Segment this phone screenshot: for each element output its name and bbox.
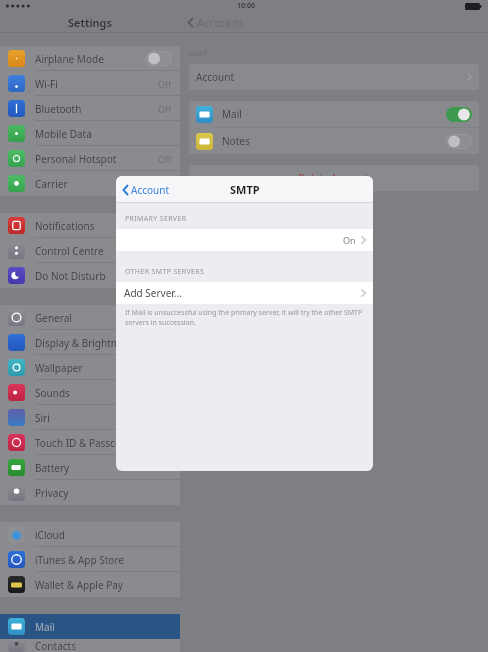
button[interactable]: Do Not Disturb xyxy=(0,263,180,288)
staticText: Bluetooth xyxy=(35,102,82,116)
button[interactable]: General xyxy=(0,305,180,330)
staticText: Settings xyxy=(68,15,112,30)
button[interactable]: Battery xyxy=(0,455,180,480)
button[interactable]: Bluetooth xyxy=(0,96,180,121)
staticText: Contacts xyxy=(35,639,76,652)
staticText: Privacy xyxy=(35,486,69,500)
staticText: OTHER SMTP SERVERS xyxy=(125,267,205,277)
button[interactable]: Wallpaper xyxy=(0,355,180,380)
button[interactable]: Account xyxy=(121,180,172,200)
button[interactable]: Control Centre xyxy=(0,238,180,263)
staticText: Wallet & Apple Pay xyxy=(35,578,123,592)
staticText: SMTP xyxy=(230,182,260,197)
staticText: Sounds xyxy=(35,386,70,400)
button[interactable]: Touch ID & Passcode xyxy=(0,430,180,455)
staticText: IMAP xyxy=(189,49,209,59)
staticText: 10:00 xyxy=(237,1,255,11)
button[interactable]: iTunes & App Store xyxy=(0,547,180,572)
button[interactable]: Personal Hotspot xyxy=(0,146,180,171)
staticText: Personal Hotspot xyxy=(35,152,117,166)
button[interactable]: On xyxy=(116,229,373,251)
staticText: Delete Account xyxy=(298,171,370,185)
button[interactable]: Mail xyxy=(0,614,180,639)
button[interactable]: Contacts xyxy=(0,639,180,652)
staticText: Notes xyxy=(222,134,250,148)
staticText: Wi-Fi xyxy=(35,77,58,91)
button[interactable]: Siri xyxy=(0,405,180,430)
button[interactable]: Wi-Fi xyxy=(0,71,180,96)
button[interactable]: iCloud xyxy=(0,522,180,547)
button[interactable]: Notes off xyxy=(446,134,472,149)
staticText: Wallpaper xyxy=(35,361,83,375)
button[interactable]: Mail xyxy=(189,101,479,127)
staticText: Display & Brightness xyxy=(35,336,133,350)
staticText: Siri xyxy=(35,411,50,425)
staticText: General xyxy=(35,311,72,325)
staticText: Off xyxy=(158,153,172,165)
button[interactable]: Carrier xyxy=(0,171,180,196)
staticText: Account xyxy=(196,70,235,84)
button[interactable]: Notifications xyxy=(0,213,180,238)
staticText: Add Server... xyxy=(124,286,182,300)
staticText: Touch ID & Passcode xyxy=(35,436,133,450)
button[interactable] xyxy=(146,51,172,66)
staticText: PRIMARY SERVER xyxy=(125,214,187,224)
button[interactable]: Notes xyxy=(189,128,479,154)
button[interactable]: Accounts xyxy=(186,13,247,32)
staticText: Notifications xyxy=(35,219,95,233)
button[interactable]: Account xyxy=(189,64,479,90)
staticText: Mail xyxy=(222,107,242,121)
staticText: Control Centre xyxy=(35,244,104,258)
staticText: Off xyxy=(158,103,172,115)
staticText: Airplane Mode xyxy=(35,52,104,66)
staticText: Carrier xyxy=(35,177,68,191)
button[interactable]: Add Server... xyxy=(116,282,373,304)
staticText: Account xyxy=(131,183,170,197)
staticText: iTunes & App Store xyxy=(35,553,124,567)
staticText: Accounts xyxy=(197,15,245,30)
staticText: iCloud xyxy=(35,528,65,542)
button[interactable]: Wallet & Apple Pay xyxy=(0,572,180,597)
button[interactable]: Mail on xyxy=(446,107,472,122)
button[interactable]: Mobile Data xyxy=(0,121,180,146)
staticText: Do Not Disturb xyxy=(35,269,106,283)
button[interactable]: Airplane Mode xyxy=(0,46,180,71)
staticText: Off xyxy=(158,78,172,90)
staticText: Mobile Data xyxy=(35,127,92,141)
staticText: Mail xyxy=(35,620,55,634)
staticText: If Mail is unsuccessful using the primar… xyxy=(125,308,364,328)
staticText: On xyxy=(343,234,356,246)
button[interactable]: Display & Brightness xyxy=(0,330,180,355)
button[interactable]: Privacy xyxy=(0,480,180,505)
button[interactable]: Sounds xyxy=(0,380,180,405)
staticText: Battery xyxy=(35,461,70,475)
button[interactable]: Delete Account xyxy=(189,165,479,191)
